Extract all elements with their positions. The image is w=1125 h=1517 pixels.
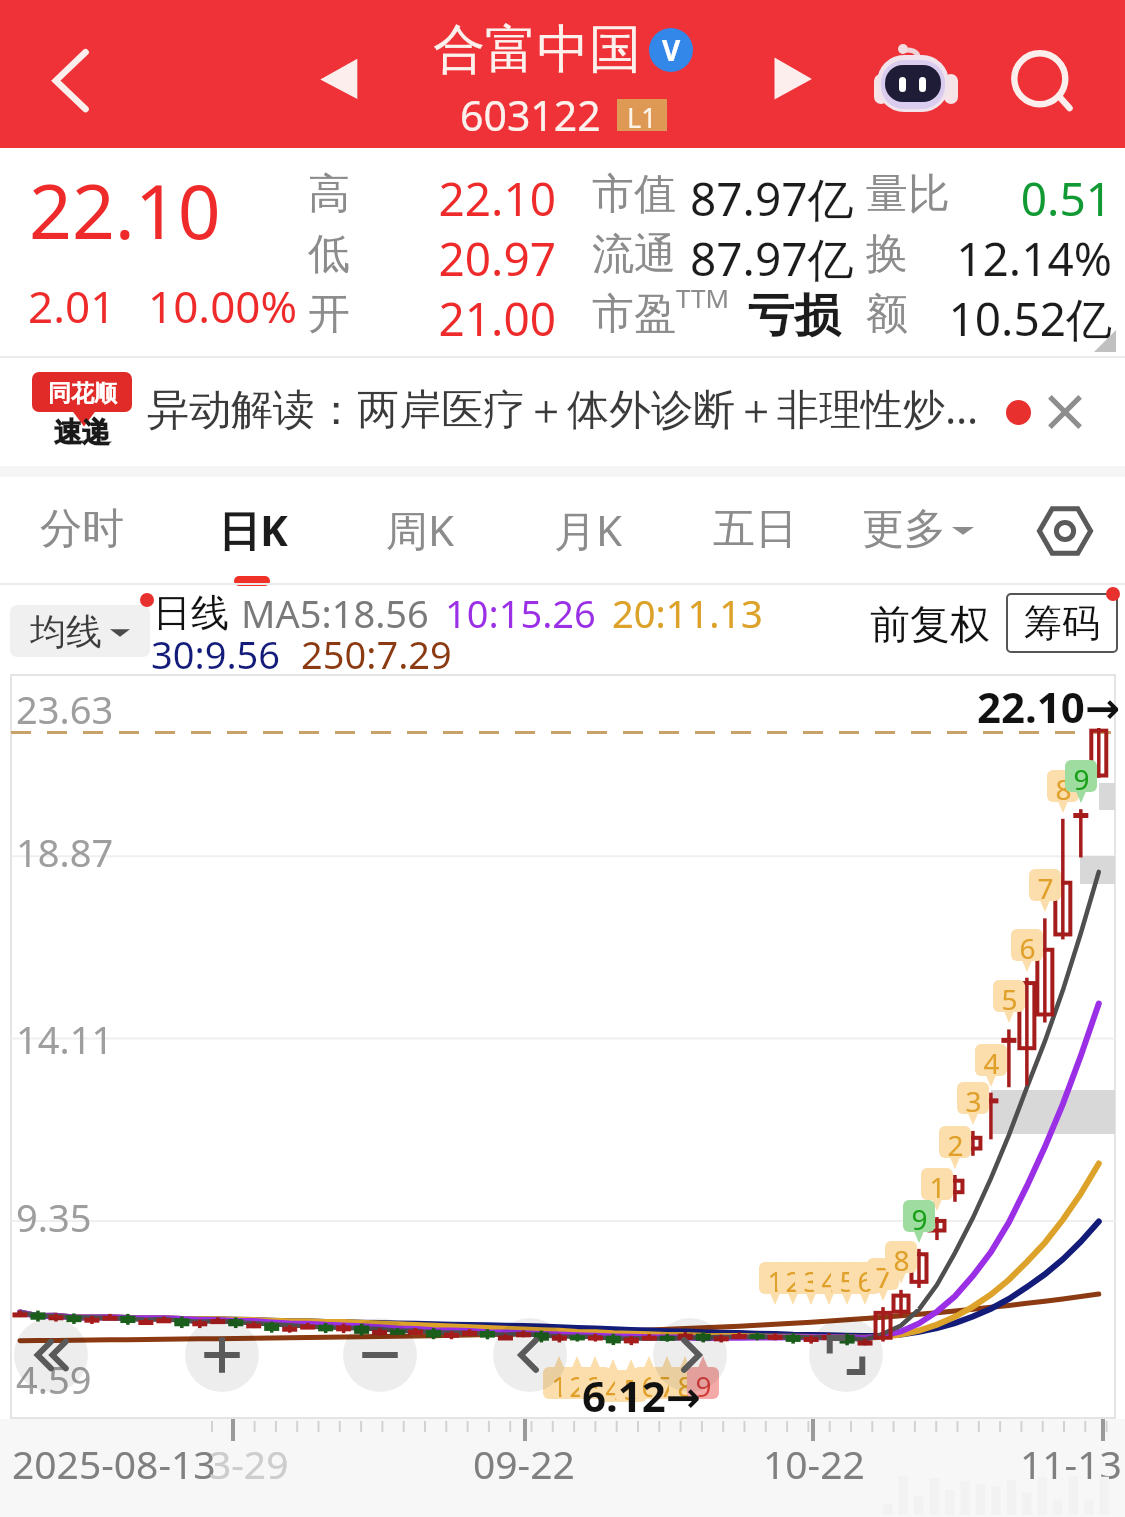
staticText: 5 — [623, 1370, 640, 1402]
button[interactable]: 分时 — [4, 477, 160, 585]
staticText: 9 — [911, 1200, 928, 1232]
staticText: 筹码 — [1024, 599, 1100, 647]
button[interactable]: Previous stock — [300, 34, 380, 114]
staticText: 87.97亿 — [690, 167, 854, 230]
staticText: 周K — [386, 501, 454, 558]
button[interactable]: 月K — [510, 477, 666, 585]
staticText: 6 — [857, 1262, 874, 1294]
staticText: 09-22 — [473, 1437, 575, 1490]
button[interactable]: 前复权 — [870, 599, 990, 649]
staticText: 月K — [554, 501, 622, 558]
staticText: 速递 — [54, 415, 110, 450]
button[interactable]: Chart settings — [1017, 483, 1113, 579]
staticText: 12.14% — [900, 227, 1112, 290]
button[interactable]: 筹码 — [1006, 593, 1118, 653]
staticText: 开 — [308, 288, 350, 341]
button[interactable]: 同花顺 — [0, 358, 1125, 466]
staticText: 五日 — [713, 503, 797, 556]
staticText: 亏损 — [748, 287, 840, 345]
staticText: 2025-08-13 — [12, 1437, 216, 1490]
button[interactable]: Scroll left — [493, 1318, 567, 1392]
staticText: 4 — [983, 1044, 1000, 1076]
button[interactable]: 日K — [175, 477, 331, 585]
staticText: TTM — [676, 280, 730, 315]
staticText: 2 — [569, 1367, 586, 1399]
staticText: 高 — [308, 168, 350, 221]
staticText: 22.10 — [29, 159, 221, 261]
staticText: 同花顺 — [48, 379, 117, 408]
button[interactable]: AI assistant — [860, 19, 970, 129]
staticText: 18.87 — [16, 826, 114, 878]
staticText: 4 — [821, 1262, 838, 1294]
staticText: 2.01 — [28, 276, 116, 336]
staticText: 87.97亿 — [690, 227, 854, 290]
staticText: 23.63 — [16, 683, 114, 735]
staticText: 换 — [866, 228, 908, 281]
staticText: 10:15.26 — [445, 587, 596, 639]
staticText: 8 — [893, 1241, 910, 1273]
staticText: 10-22 — [763, 1437, 865, 1490]
button[interactable]: Close — [1038, 385, 1092, 439]
staticText: 1 — [929, 1168, 946, 1200]
staticText: 6.12→ — [582, 1367, 702, 1424]
staticText: 5 — [1001, 980, 1018, 1012]
staticText: 7 — [875, 1258, 892, 1290]
staticText: L1 — [627, 99, 657, 131]
button[interactable]: 周K — [342, 477, 498, 585]
staticText: 前复权 — [870, 599, 990, 649]
button[interactable]: 均线 — [10, 605, 150, 657]
staticText: 14.11 — [16, 1013, 114, 1065]
staticText: 3-29 — [209, 1437, 289, 1490]
staticText: 4 — [605, 1370, 622, 1402]
button[interactable]: Search — [996, 28, 1092, 120]
staticText: 日K — [218, 501, 288, 558]
staticText: 8 — [1055, 770, 1072, 802]
button[interactable]: 更多 — [823, 477, 1013, 585]
staticText: 均线 — [30, 609, 102, 654]
staticText: 22.10 — [396, 167, 556, 230]
staticText: 1 — [767, 1262, 784, 1294]
staticText: 5 — [839, 1262, 856, 1294]
staticText: MA5:18.56 — [241, 587, 429, 639]
staticText: 分时 — [40, 503, 124, 556]
staticText: 2 — [785, 1262, 802, 1294]
staticText: 日线 — [153, 589, 229, 637]
button[interactable]: 五日 — [677, 477, 833, 585]
staticText: 异动解读：两岸医疗＋体外诊断＋非理性炒… — [147, 379, 979, 436]
staticText: 9.35 — [16, 1191, 92, 1243]
staticText: 3 — [803, 1262, 820, 1294]
staticText: 7 — [1037, 869, 1054, 901]
staticText: 2 — [947, 1126, 964, 1158]
staticText: 9 — [1073, 760, 1090, 792]
staticText: 11-13 — [1020, 1437, 1122, 1490]
staticText: 20.97 — [396, 227, 556, 290]
staticText: 3 — [587, 1367, 604, 1399]
staticText: 市盈 — [592, 288, 676, 341]
staticText: 0.51 — [900, 167, 1112, 230]
staticText: 10.52亿 — [900, 287, 1112, 350]
staticText: 603122 — [460, 87, 601, 143]
staticText: 市值 — [592, 168, 676, 221]
staticText: 21.00 — [396, 287, 556, 350]
staticText: 4.59 — [16, 1353, 92, 1405]
staticText: 7 — [659, 1367, 676, 1399]
button[interactable]: Zoom in — [185, 1318, 259, 1392]
staticText: 流通 — [592, 228, 676, 281]
staticText: 9 — [695, 1367, 712, 1399]
button[interactable]: Back — [26, 28, 122, 120]
staticText: 低 — [308, 228, 350, 281]
staticText: 20:11.13 — [612, 587, 763, 639]
staticText: 30:9.56 — [151, 628, 281, 680]
staticText: 10.00% — [148, 276, 298, 336]
button[interactable]: Scroll far left — [14, 1318, 88, 1392]
button[interactable]: Zoom out — [343, 1318, 417, 1392]
staticText: 22.10→ — [977, 678, 1121, 735]
button[interactable]: Next stock — [750, 34, 830, 114]
staticText: 1 — [551, 1367, 568, 1399]
staticText: 3 — [965, 1082, 982, 1114]
button[interactable]: Scroll right — [653, 1318, 727, 1392]
staticText: 6 — [641, 1367, 658, 1399]
staticText: 8 — [677, 1367, 694, 1399]
staticText: 250:7.29 — [301, 628, 452, 680]
button[interactable]: Fullscreen — [809, 1318, 883, 1392]
